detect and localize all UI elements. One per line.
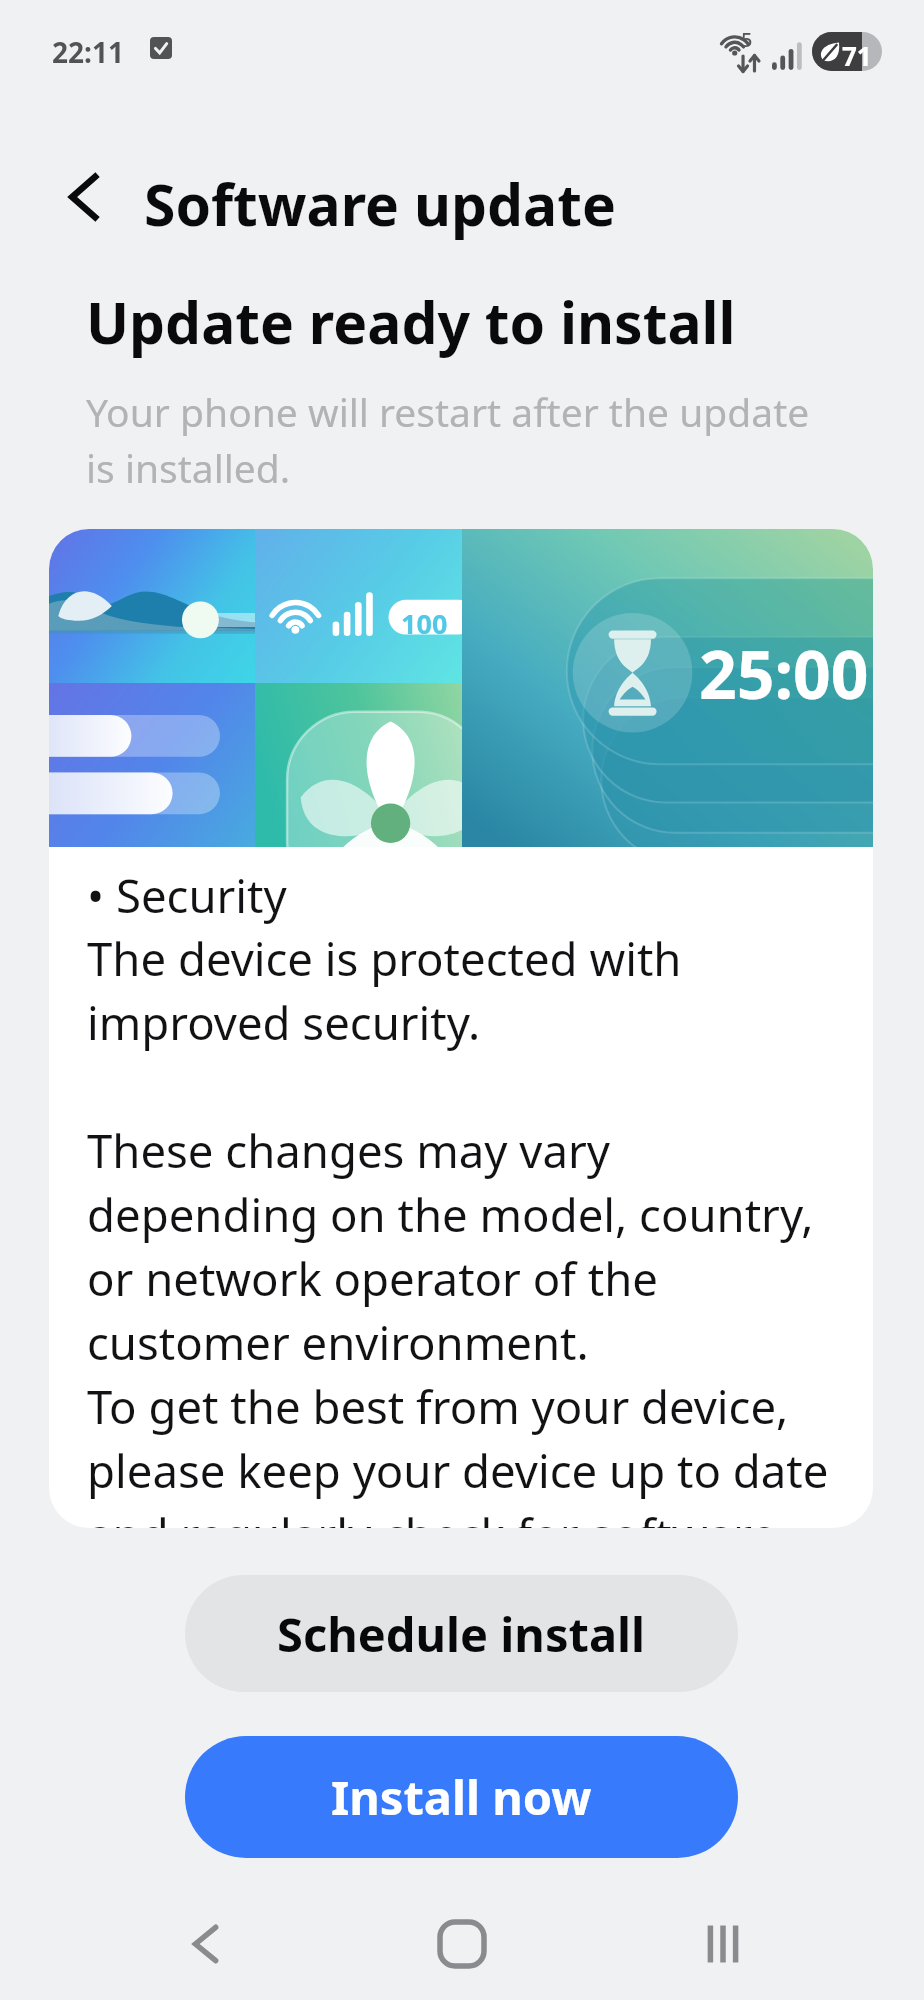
button[interactable]: Recents [667, 1888, 779, 2000]
button[interactable]: Back [48, 160, 122, 234]
button[interactable]: Back [150, 1888, 262, 2000]
button[interactable]: Schedule install [185, 1575, 738, 1692]
staticText: 22:11 [52, 33, 124, 71]
button[interactable]: Home [406, 1888, 518, 2000]
staticText: Your phone will restart after the update… [86, 385, 810, 494]
staticText: 5 [741, 26, 753, 53]
staticText: 100 [401, 605, 448, 642]
staticText: 25:00 [699, 628, 869, 718]
staticText: Update ready to install [86, 283, 736, 361]
staticText: 71 [842, 38, 872, 71]
staticText: Schedule install [277, 1602, 646, 1666]
staticText: Install now [331, 1765, 592, 1829]
staticText: Software update [144, 165, 616, 243]
button[interactable]: Install now [185, 1736, 738, 1858]
staticText: • Security The device is protected with … [87, 864, 829, 1528]
